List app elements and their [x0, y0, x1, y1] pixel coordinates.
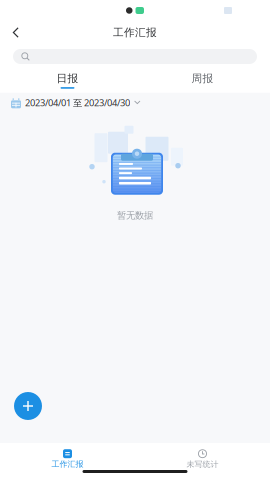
staticText: 未写统计	[186, 459, 218, 469]
button[interactable]: 未写统计	[135, 449, 270, 469]
staticText: 周报	[191, 72, 213, 85]
staticText: 日报	[56, 72, 78, 85]
staticText: 工作汇报	[51, 459, 83, 469]
staticText: 工作汇报	[113, 26, 157, 39]
button[interactable]: 工作汇报	[0, 449, 135, 469]
button[interactable]: 2023/04/01 至 2023/04/30	[0, 93, 270, 113]
button[interactable]: 新增汇报	[8, 386, 48, 426]
button[interactable]: 周报	[135, 72, 270, 89]
button[interactable]: 返回	[0, 21, 32, 44]
staticText: 2023/04/01 至 2023/04/30	[25, 96, 130, 109]
staticText: 暂无数据	[117, 210, 153, 221]
button[interactable]: 日报	[0, 72, 135, 89]
